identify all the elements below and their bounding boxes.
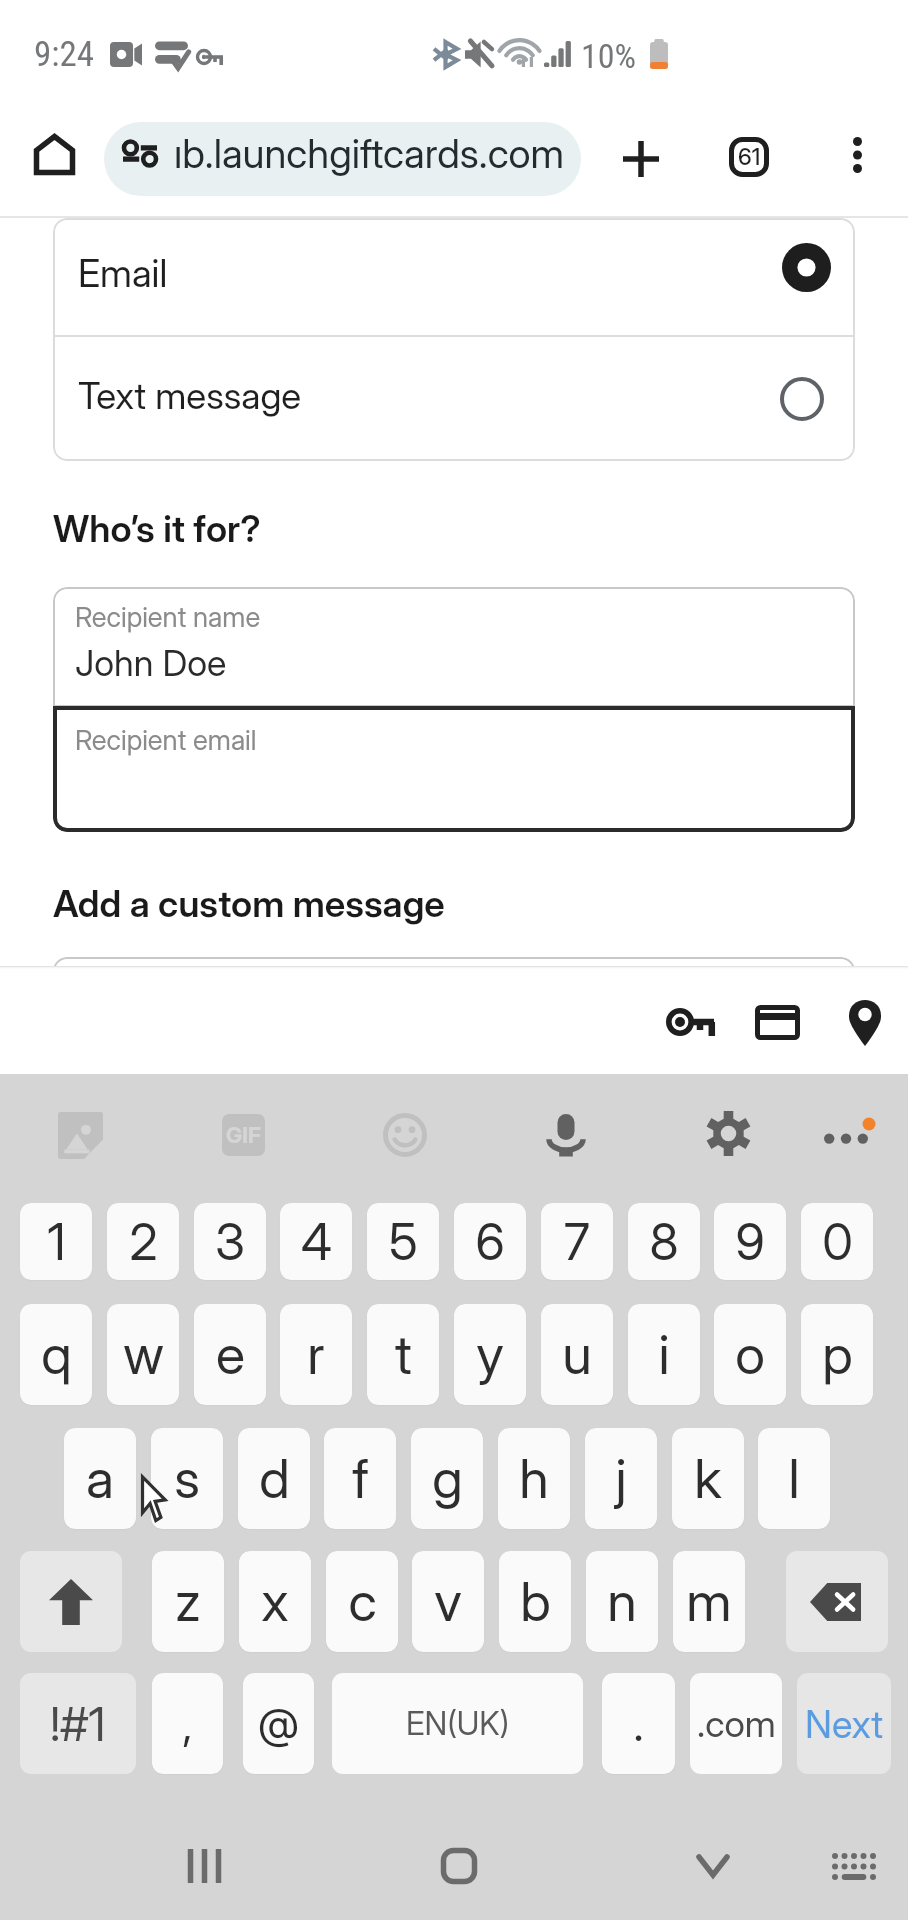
staticText: s [174, 1446, 200, 1511]
button[interactable]: v [412, 1551, 484, 1652]
staticText: m [686, 1569, 732, 1634]
staticText: 61 [738, 143, 761, 171]
staticText: p [822, 1322, 853, 1387]
button[interactable]: Recent apps [160, 1822, 248, 1910]
button[interactable]: 3 [194, 1203, 266, 1280]
button[interactable]: g [411, 1428, 483, 1529]
button[interactable]: o [714, 1304, 786, 1405]
staticText: . [633, 1696, 644, 1752]
button[interactable]: Home [415, 1822, 503, 1910]
button[interactable]: b [499, 1551, 571, 1652]
button[interactable]: t [367, 1304, 439, 1405]
staticText: e [216, 1322, 245, 1387]
staticText: i [658, 1322, 670, 1387]
button[interactable]: q [20, 1304, 92, 1405]
button[interactable]: n [586, 1551, 658, 1652]
button[interactable]: Tabs [711, 119, 787, 195]
button[interactable]: Voice input [532, 1101, 600, 1169]
button[interactable]: 6 [454, 1203, 526, 1280]
staticText: 9 [735, 1212, 765, 1272]
button[interactable]: l [758, 1428, 830, 1529]
staticText: t [395, 1322, 412, 1387]
button[interactable]: Next [797, 1673, 891, 1774]
button[interactable]: @ [243, 1673, 314, 1774]
staticText: Add a custom message [53, 881, 445, 926]
button[interactable]: x [239, 1551, 311, 1652]
button[interactable]: More keyboard options [812, 1101, 880, 1169]
button[interactable]: 5 [367, 1203, 439, 1280]
staticText: ıb.launchgiftcards.com [174, 129, 565, 177]
button[interactable]: GIF [209, 1101, 277, 1169]
staticText: @ [258, 1698, 299, 1749]
button[interactable]: h [498, 1428, 570, 1529]
staticText: Recipient name [75, 600, 261, 633]
button[interactable]: e [194, 1304, 266, 1405]
staticText: x [261, 1569, 289, 1634]
button[interactable]: Keyboard layout [810, 1822, 898, 1910]
button[interactable]: y [454, 1304, 526, 1405]
button[interactable]: 1 [20, 1203, 92, 1280]
button[interactable]: u [541, 1304, 613, 1405]
button[interactable]: More options [821, 119, 893, 191]
button[interactable]: Payment methods [743, 988, 811, 1056]
button[interactable]: Emoji [371, 1101, 439, 1169]
button[interactable]: s [151, 1428, 223, 1529]
staticText: f [352, 1446, 369, 1511]
button[interactable]: w [107, 1304, 179, 1405]
button[interactable]: a [64, 1428, 136, 1529]
button[interactable]: m [673, 1551, 745, 1652]
button[interactable]: j [585, 1428, 657, 1529]
staticText: r [307, 1322, 325, 1387]
button[interactable]: EN(UK) [332, 1673, 583, 1774]
button[interactable]: Recipient name [53, 587, 855, 707]
staticText: !#1 [50, 1695, 106, 1752]
staticText: 6 [475, 1212, 505, 1272]
staticText: 5 [389, 1212, 418, 1272]
button[interactable]: Home [19, 119, 89, 189]
staticText: k [694, 1446, 722, 1511]
button[interactable]: f [324, 1428, 396, 1529]
button[interactable]: Addresses [831, 988, 899, 1056]
button[interactable]: i [628, 1304, 700, 1405]
button[interactable]: d [238, 1428, 310, 1529]
staticText: Email [78, 250, 168, 296]
button[interactable]: 9 [714, 1203, 786, 1280]
button[interactable]: .com [690, 1673, 782, 1774]
button[interactable]: r [280, 1304, 352, 1405]
button[interactable]: 0 [801, 1203, 873, 1280]
staticText: 8 [649, 1212, 679, 1272]
staticText: Who’s it for? [53, 506, 261, 551]
staticText: Next [805, 1701, 884, 1747]
button[interactable]: 4 [280, 1203, 352, 1280]
button[interactable]: c [326, 1551, 398, 1652]
staticText: c [348, 1569, 377, 1634]
staticText: b [520, 1569, 551, 1634]
staticText: v [434, 1569, 462, 1634]
button[interactable]: Stickers [46, 1101, 114, 1169]
button[interactable]: ıb.launchgiftcards.com [104, 122, 581, 196]
staticText: w [123, 1322, 164, 1387]
staticText: j [615, 1446, 627, 1511]
button[interactable]: Email [53, 218, 855, 335]
button[interactable]: Keyboard settings [694, 1099, 762, 1167]
button[interactable]: Backspace [786, 1551, 888, 1652]
button[interactable]: Hide keyboard [669, 1822, 757, 1910]
button[interactable]: , [152, 1673, 223, 1774]
button[interactable]: . [602, 1673, 675, 1774]
button[interactable]: New tab [603, 121, 679, 197]
staticText: 9:24 [34, 34, 95, 75]
button[interactable]: Shift [20, 1551, 122, 1652]
button[interactable]: 8 [628, 1203, 700, 1280]
button[interactable]: Text message [53, 337, 855, 461]
button[interactable]: Passwords [656, 988, 724, 1056]
button[interactable]: !#1 [20, 1673, 136, 1774]
button[interactable]: p [801, 1304, 873, 1405]
button[interactable]: Recipient email [53, 706, 855, 832]
staticText: h [519, 1446, 549, 1511]
button[interactable]: 2 [107, 1203, 179, 1280]
staticText: l [788, 1446, 800, 1511]
button[interactable]: k [672, 1428, 744, 1529]
button[interactable]: z [152, 1551, 224, 1652]
staticText: Text message [78, 373, 302, 418]
button[interactable]: 7 [541, 1203, 613, 1280]
